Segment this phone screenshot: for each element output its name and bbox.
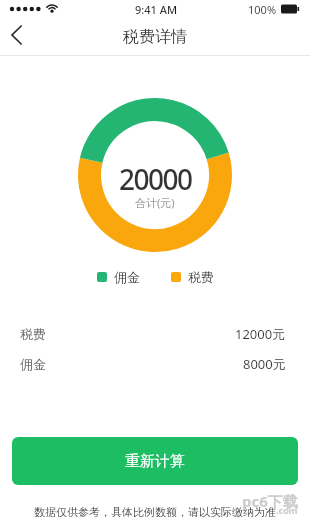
staticText: 9:41 AM — [135, 2, 178, 17]
staticText: 税费 — [20, 326, 46, 342]
staticText: 100% — [248, 2, 277, 17]
staticText: 税费 — [188, 269, 214, 285]
staticText: 20000 — [119, 160, 192, 198]
staticText: 12000元 — [235, 325, 286, 343]
button[interactable]: 税费 — [0, 319, 310, 349]
staticText: pc6下载 — [242, 491, 298, 511]
button[interactable]: 佣金 — [0, 349, 310, 379]
staticText: .com — [276, 504, 298, 516]
staticText: 税费详情 — [123, 27, 187, 47]
button[interactable]: 重新计算 — [12, 437, 298, 485]
staticText: 8000元 — [243, 355, 286, 373]
staticText: 重新计算 — [125, 452, 185, 471]
staticText: 佣金 — [114, 269, 140, 285]
staticText: 数据仅供参考，具体比例数额，请以实际缴纳为准 — [34, 505, 276, 517]
button[interactable] — [0, 17, 36, 53]
staticText: 佣金 — [20, 356, 46, 372]
staticText: 合计(元) — [135, 195, 175, 210]
